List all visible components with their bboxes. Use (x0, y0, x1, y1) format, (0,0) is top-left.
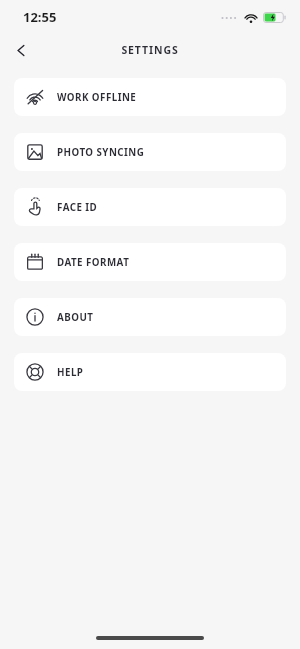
staticText: DATE FORMAT (57, 256, 130, 269)
button[interactable]: DATE FORMAT (14, 243, 286, 281)
button[interactable]: FACE ID (14, 188, 286, 226)
button[interactable]: HELP (14, 353, 286, 391)
staticText: PHOTO SYNCING (57, 146, 145, 159)
button[interactable]: PHOTO SYNCING (14, 133, 286, 171)
button[interactable]: WORK OFFLINE (14, 78, 286, 116)
button[interactable]: Back (6, 35, 36, 65)
staticText: WORK OFFLINE (57, 91, 137, 104)
staticText: ABOUT (57, 311, 94, 324)
staticText: 12:55 (23, 8, 57, 26)
staticText: SETTINGS (121, 43, 179, 57)
staticText: FACE ID (57, 201, 98, 214)
button[interactable]: ABOUT (14, 298, 286, 336)
staticText: HELP (57, 366, 84, 379)
